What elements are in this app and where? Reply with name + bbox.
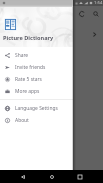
button[interactable]: Back	[17, 171, 28, 182]
button[interactable]: Invite friends	[0, 62, 73, 73]
staticText: 1:54	[94, 0, 103, 6]
button[interactable]: Home	[46, 171, 57, 182]
button[interactable]: Recent apps	[74, 171, 85, 182]
button[interactable]: Language Settings	[0, 103, 73, 114]
staticText: Share	[15, 52, 29, 59]
staticText: Picture Dictionary	[3, 34, 54, 42]
button[interactable]: Refresh	[76, 8, 87, 19]
button[interactable]: More apps	[0, 86, 73, 97]
button[interactable]: Rate 5 stars	[0, 74, 73, 85]
staticText: More apps	[15, 88, 40, 95]
button[interactable]: Next page	[89, 29, 99, 39]
staticText: Rate 5 stars	[15, 76, 42, 83]
button[interactable]: About	[0, 115, 73, 126]
staticText: Language Settings	[15, 105, 58, 112]
staticText: Invite friends	[15, 64, 46, 71]
button[interactable]: Share	[0, 50, 73, 61]
staticText: About	[15, 117, 29, 124]
button[interactable]: Search	[90, 8, 101, 19]
